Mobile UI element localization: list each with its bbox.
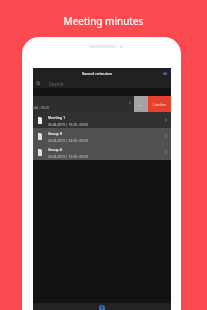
staticText: Meeting minutes	[0, 14, 207, 28]
staticText: 0:40 - 00:10	[32, 106, 50, 110]
button[interactable]: Group B	[38, 128, 168, 144]
button[interactable]: Search	[36, 79, 171, 88]
button[interactable]: Group A	[38, 144, 168, 160]
button[interactable]: Record	[99, 305, 105, 310]
button[interactable]: Select	[163, 71, 168, 76]
staticText: Löschen	[153, 102, 167, 107]
button[interactable]: Löschen	[148, 96, 171, 112]
staticText: 26.04.2019 | 23:30 - 00:09	[48, 138, 89, 142]
staticText: ...	[139, 102, 143, 107]
button[interactable]: ...	[134, 96, 148, 112]
staticText: 26.04.2019 | 15:30 - 00:06	[48, 122, 89, 126]
staticText: 26.04.2019 | 15:30 - 00:09	[48, 154, 89, 158]
staticText: Saved minutes	[82, 70, 113, 76]
button[interactable]: Meeting 1	[38, 112, 168, 128]
staticText: Search	[49, 81, 64, 87]
staticText: Group A	[48, 147, 63, 152]
staticText: Meeting 1	[48, 115, 66, 120]
staticText: Group B	[48, 131, 63, 136]
